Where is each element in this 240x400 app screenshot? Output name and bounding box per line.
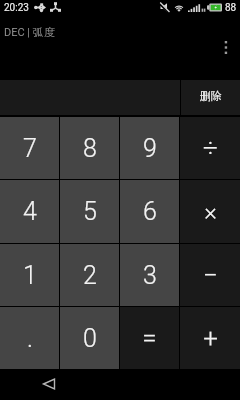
button[interactable]: 8 (60, 117, 119, 179)
button[interactable]: 4 (0, 180, 59, 243)
staticText: DEC | 弧度 (4, 25, 55, 39)
staticText: − (203, 260, 218, 290)
button[interactable]: 5 (60, 180, 119, 243)
staticText: 7 (23, 134, 37, 163)
staticText: 6 (143, 197, 157, 226)
button[interactable]: + (180, 307, 240, 369)
button[interactable]: 9 (120, 117, 179, 179)
button[interactable]: More options (217, 36, 235, 60)
button[interactable]: 1 (0, 244, 59, 306)
staticText: 删除 (200, 89, 222, 103)
staticText: × (204, 198, 217, 226)
staticText: . (27, 324, 33, 353)
staticText: ÷ (203, 133, 218, 163)
button[interactable]: Back (32, 372, 66, 396)
staticText: 4 (23, 197, 37, 226)
button[interactable]: − (180, 244, 240, 306)
staticText: 1 (23, 261, 37, 290)
staticText: 3 (143, 261, 157, 290)
button[interactable]: 删除 (181, 80, 240, 115)
staticText: + (203, 323, 218, 353)
staticText: 88 (225, 2, 237, 14)
staticText: 0 (83, 324, 97, 353)
staticText: 9 (143, 134, 157, 163)
button[interactable]: 7 (0, 117, 59, 179)
staticText: 2 (83, 261, 97, 290)
staticText: 5 (83, 197, 97, 226)
staticText: 20:23 (4, 2, 29, 14)
button[interactable]: 3 (120, 244, 179, 306)
button[interactable]: 2 (60, 244, 119, 306)
button[interactable]: 0 (60, 307, 119, 369)
button[interactable]: ÷ (180, 117, 240, 179)
button[interactable]: × (180, 180, 240, 243)
button[interactable]: . (0, 307, 59, 369)
button[interactable]: = (120, 307, 179, 369)
button[interactable]: 6 (120, 180, 179, 243)
staticText: 8 (83, 134, 97, 163)
staticText: = (142, 323, 157, 353)
